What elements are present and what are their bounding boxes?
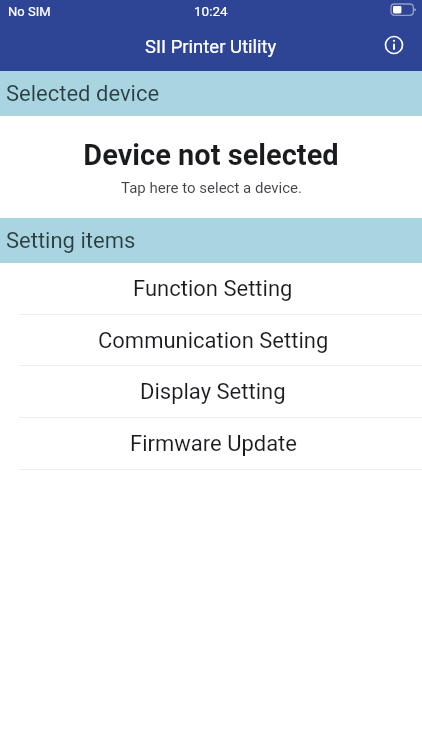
button[interactable]: Device not selected (0, 116, 422, 218)
button[interactable]: Display Setting (0, 366, 422, 418)
staticText: Display Setting (140, 379, 286, 405)
staticText: Communication Setting (98, 328, 329, 354)
staticText: Setting items (6, 228, 136, 254)
staticText: SII Printer Utility (145, 36, 277, 58)
button[interactable]: Communication Setting (0, 315, 422, 366)
staticText: Firmware Update (130, 431, 297, 457)
staticText: 10:24 (194, 3, 228, 19)
staticText: Tap here to select a device. (121, 179, 302, 197)
button[interactable]: Firmware Update (0, 418, 422, 470)
button[interactable]: Information (372, 26, 416, 64)
staticText: No SIM (8, 4, 51, 19)
button[interactable]: Function Setting (0, 263, 422, 315)
staticText: Device not selected (83, 138, 339, 172)
staticText: Selected device (6, 81, 160, 107)
staticText: Function Setting (133, 276, 293, 302)
